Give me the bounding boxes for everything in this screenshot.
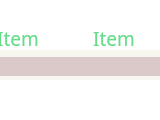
staticText: Item xyxy=(0,26,39,46)
button[interactable]: Item xyxy=(93,26,135,46)
staticText: Item xyxy=(93,26,135,46)
button[interactable]: Item xyxy=(0,26,39,46)
